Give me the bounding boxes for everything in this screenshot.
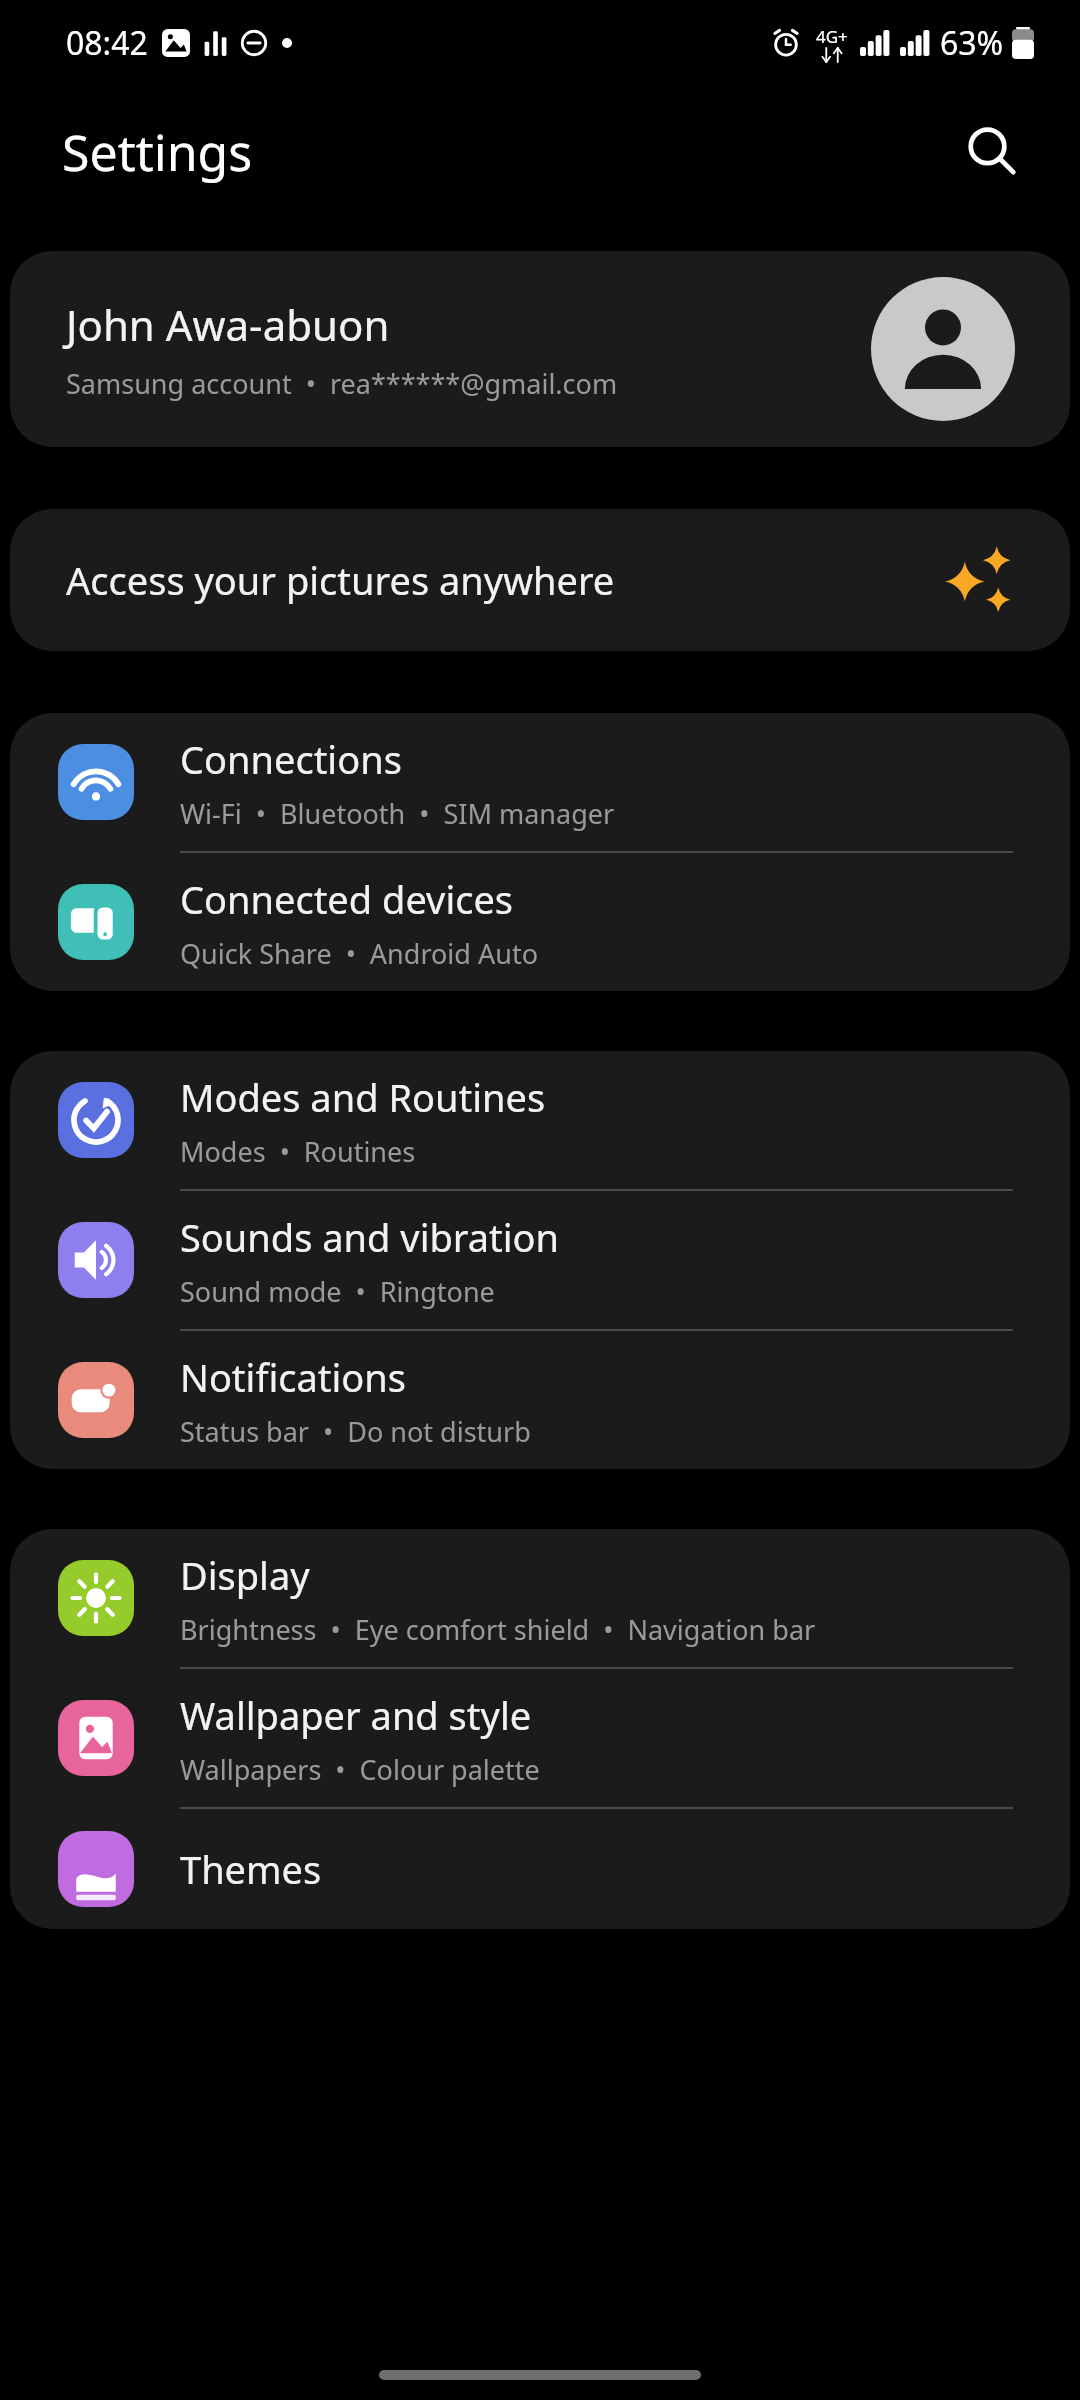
button[interactable]: Sounds and vibration (10, 1191, 1070, 1329)
staticText: Settings (62, 118, 253, 186)
button[interactable]: Wallpaper and style (10, 1669, 1070, 1807)
staticText: 4G+ (816, 25, 848, 48)
button[interactable]: Notifications (10, 1331, 1070, 1469)
staticText: Samsung account • rea******@gmail.com (66, 365, 618, 402)
staticText: Wi-Fi • Bluetooth • SIM manager (180, 795, 615, 832)
staticText: Connections (180, 733, 402, 785)
staticText: Modes and Routines (180, 1071, 546, 1123)
staticText: Sound mode • Ringtone (180, 1273, 495, 1310)
button[interactable]: Connected devices (10, 853, 1070, 991)
button[interactable]: Connections (10, 713, 1070, 851)
staticText: Sounds and vibration (180, 1211, 560, 1263)
button[interactable]: Display (10, 1529, 1070, 1667)
staticText: 08:42 (66, 21, 148, 65)
staticText: Wallpaper and style (180, 1689, 532, 1741)
staticText: Notifications (180, 1351, 407, 1403)
staticText: Access your pictures anywhere (66, 554, 615, 606)
staticText: John Awa-abuon (66, 296, 390, 353)
button[interactable]: Themes (10, 1809, 1070, 1929)
staticText: Connected devices (180, 873, 514, 925)
staticText: Display (180, 1549, 310, 1601)
staticText: Quick Share • Android Auto (180, 935, 538, 972)
button[interactable]: Modes and Routines (10, 1051, 1070, 1189)
staticText: Brightness • Eye comfort shield • Naviga… (180, 1611, 816, 1648)
staticText: Modes • Routines (180, 1133, 416, 1170)
button[interactable]: Search (950, 110, 1034, 194)
staticText: Themes (180, 1843, 322, 1895)
staticText: Wallpapers • Colour palette (180, 1751, 540, 1788)
staticText: Status bar • Do not disturb (180, 1413, 531, 1450)
staticText: 63% (940, 21, 1004, 65)
